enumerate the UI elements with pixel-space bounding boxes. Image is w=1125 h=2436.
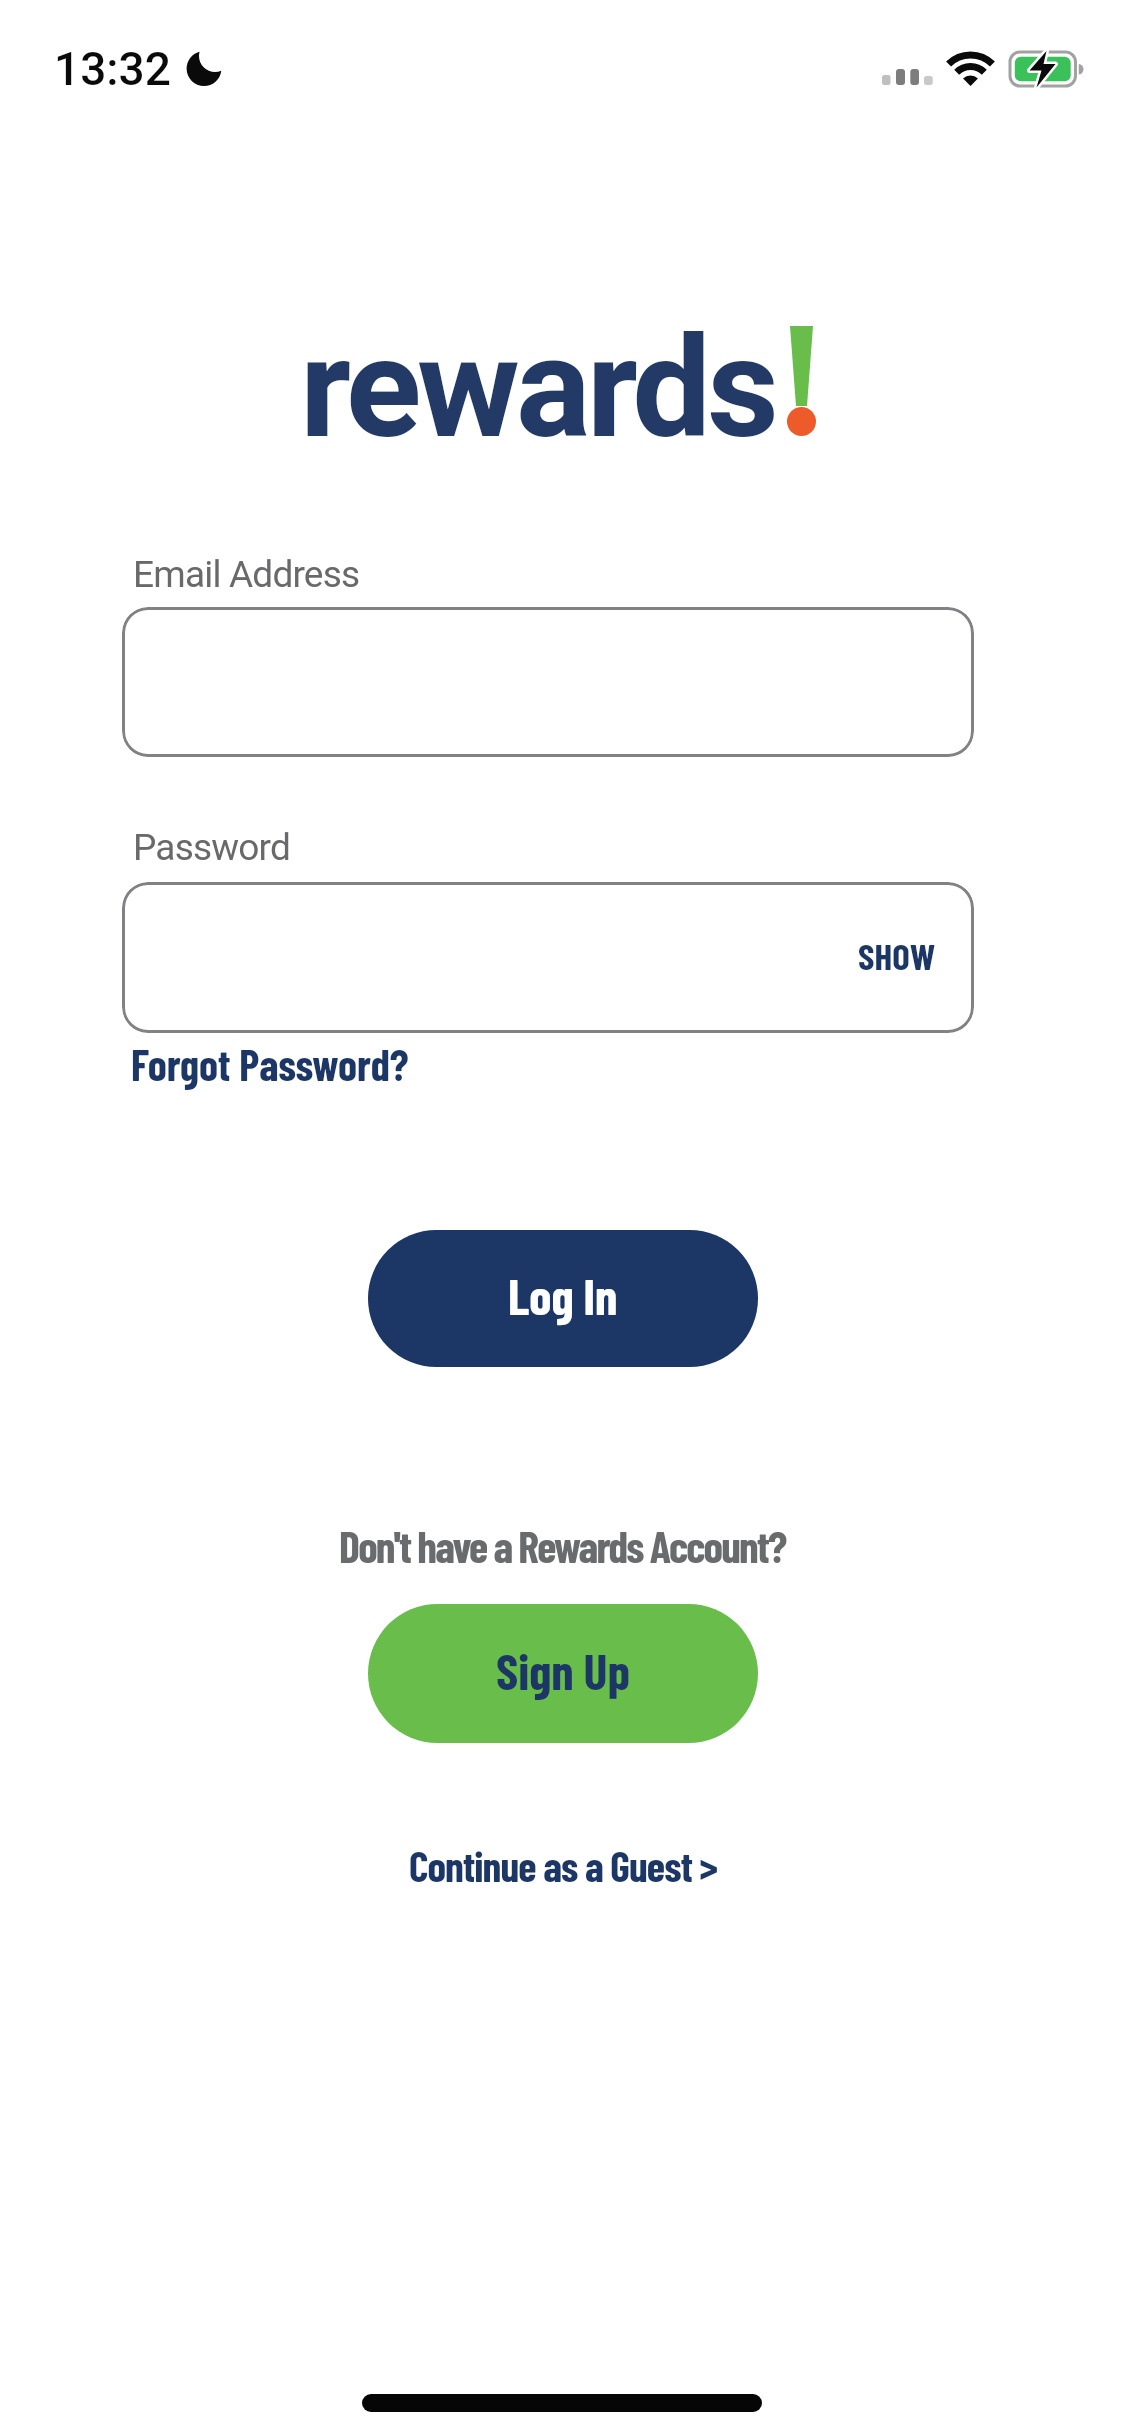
- staticText: Sign Up: [496, 1640, 630, 1700]
- staticText: Forgot Password?: [131, 1038, 409, 1090]
- staticText: rewards: [300, 306, 775, 470]
- staticText: Password: [133, 826, 291, 869]
- staticText: 13:32: [54, 42, 171, 96]
- button[interactable]: Continue as a Guest >: [409, 1840, 717, 1890]
- button[interactable]: Log In: [368, 1230, 758, 1367]
- staticText: Continue as a Guest >: [409, 1840, 717, 1890]
- staticText: Log In: [508, 1265, 618, 1325]
- staticText: Don't have a Rewards Account?: [339, 1519, 786, 1572]
- button[interactable]: Sign Up: [368, 1604, 758, 1743]
- button[interactable]: Forgot Password?: [131, 1038, 409, 1090]
- staticText: Email Address: [133, 553, 360, 596]
- staticText: SHOW: [858, 933, 936, 977]
- button[interactable]: [122, 607, 974, 757]
- button[interactable]: SHOW: [122, 882, 974, 1033]
